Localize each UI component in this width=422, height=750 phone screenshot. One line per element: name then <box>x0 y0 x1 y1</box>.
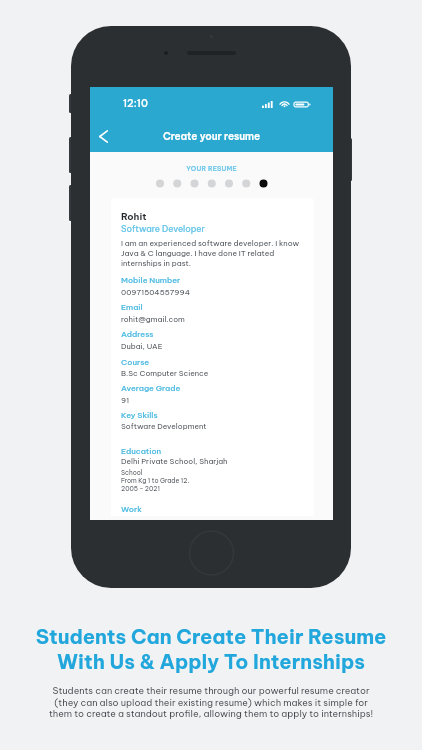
button[interactable]: Back <box>90 123 116 150</box>
staticText: Work <box>121 504 142 514</box>
staticText: 00971504557994 <box>121 287 191 297</box>
staticText: Average Grade <box>121 383 181 393</box>
staticText: Create your resume <box>90 130 333 143</box>
staticText: Email <box>121 302 143 312</box>
staticText: Address <box>121 329 154 339</box>
staticText: Course <box>121 357 150 367</box>
staticText: Software Development <box>121 421 207 431</box>
staticText: Mobile Number <box>121 275 181 285</box>
staticText: Software Developer <box>121 223 205 234</box>
staticText: Key Skills <box>121 410 158 420</box>
staticText: From Kg 1 to Grade 12. <box>121 477 190 485</box>
staticText: YOUR RESUME <box>90 164 333 172</box>
staticText: I am an experienced software developer. … <box>121 238 300 268</box>
staticText: Dubai, UAE <box>121 341 163 351</box>
staticText: 91 <box>121 395 130 405</box>
staticText: School <box>121 469 143 477</box>
staticText: Education <box>121 446 162 456</box>
staticText: Rohit <box>121 210 147 222</box>
button[interactable]: Resume pages <box>156 177 268 190</box>
staticText: Delhi Private School, Sharjah <box>121 456 228 466</box>
staticText: 12:10 <box>123 97 148 110</box>
staticText: 2005 - 2021 <box>121 485 160 493</box>
staticText: B.Sc Computer Science <box>121 368 209 378</box>
staticText: Students Can Create Their Resume With Us… <box>0 624 422 674</box>
staticText: Students can create their resume through… <box>20 685 402 719</box>
staticText: rohit@gmail.com <box>121 314 185 324</box>
